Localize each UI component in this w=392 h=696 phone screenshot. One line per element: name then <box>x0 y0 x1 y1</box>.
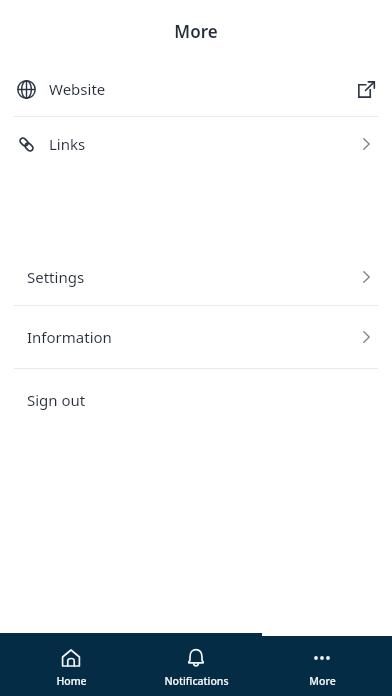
other: Website <box>17 80 36 99</box>
staticText: Information <box>27 327 112 347</box>
button[interactable]: Home <box>16 638 126 696</box>
staticText: Settings <box>27 267 85 287</box>
button[interactable]: More <box>267 638 377 696</box>
staticText: Sign out <box>27 390 86 410</box>
button[interactable]: Links <box>0 117 392 171</box>
other: Open website <box>358 81 375 98</box>
button[interactable]: Information <box>0 306 392 368</box>
staticText: More <box>309 674 336 688</box>
staticText: Links <box>49 134 86 154</box>
staticText: Website <box>49 79 106 99</box>
staticText: Notifications <box>164 674 229 688</box>
staticText: Home <box>56 674 87 688</box>
button[interactable]: Notifications <box>141 638 251 696</box>
staticText: More <box>174 20 218 43</box>
button[interactable]: Settings <box>0 249 392 305</box>
button[interactable]: Website <box>0 62 392 116</box>
other: Links <box>17 135 36 154</box>
button[interactable]: Sign out <box>0 369 392 431</box>
